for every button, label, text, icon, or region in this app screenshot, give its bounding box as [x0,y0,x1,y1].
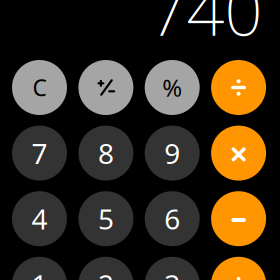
button[interactable]: 7 [12,126,67,181]
staticText: 9 [164,134,180,172]
button[interactable]: Plus Minus [78,60,133,115]
button[interactable]: Subtract [211,191,266,246]
staticText: C [32,72,46,102]
button[interactable]: Add [211,257,266,280]
staticText: 2 [98,266,114,280]
button[interactable]: C [12,60,67,115]
button[interactable]: 4 [12,191,67,246]
staticText: 740 [148,0,262,54]
staticText: 3 [164,266,180,280]
staticText: 5 [98,200,114,237]
staticText: 7 [31,134,47,172]
button[interactable]: Multiply [211,126,266,181]
button[interactable]: 9 [145,126,200,181]
button[interactable]: 1 [12,257,67,280]
button[interactable]: 8 [78,126,133,181]
button[interactable]: 6 [145,191,200,246]
staticText: 8 [98,134,114,172]
button[interactable]: 3 [145,257,200,280]
staticText: 6 [164,200,180,237]
button[interactable]: 5 [78,191,133,246]
button[interactable]: 2 [78,257,133,280]
staticText: 1 [31,266,47,280]
button[interactable]: Divide [211,60,266,115]
button[interactable]: % [145,60,200,115]
staticText: 4 [31,200,47,237]
staticText: % [162,72,182,103]
